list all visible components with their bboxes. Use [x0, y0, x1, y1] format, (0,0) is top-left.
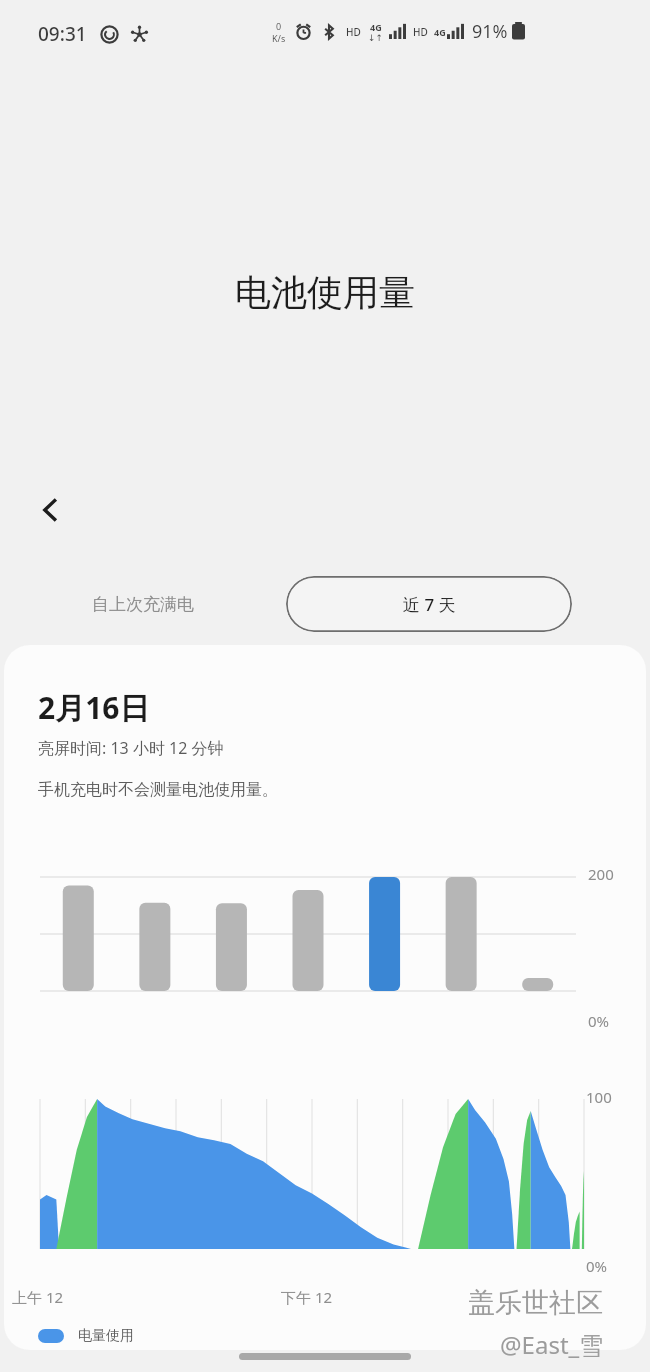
button[interactable]: 近 7 天	[286, 576, 572, 632]
staticText: 100	[586, 1087, 612, 1107]
staticText: HD	[346, 25, 361, 39]
staticText: 下午 12	[281, 1287, 333, 1307]
staticText: 电池使用量	[0, 270, 650, 315]
staticText: 0	[276, 20, 282, 32]
button[interactable]: 自上次充满电	[0, 576, 286, 632]
staticText: 电量使用	[78, 1327, 134, 1345]
staticText: K/s	[272, 32, 286, 44]
staticText: ↓↑	[368, 33, 384, 43]
staticText: 0%	[586, 1256, 608, 1276]
button[interactable]: Back	[22, 482, 78, 538]
staticText: 200	[588, 864, 614, 884]
staticText: 09:31	[38, 21, 87, 47]
staticText: 4G	[434, 26, 446, 38]
staticText: 91%	[472, 19, 508, 44]
staticText: 近 7 天	[403, 593, 456, 616]
staticText: HD	[413, 25, 428, 39]
staticText: 自上次充满电	[92, 594, 194, 615]
staticText: 盖乐世社区	[468, 1286, 603, 1320]
staticText: 亮屏时间: 13 小时 12 分钟	[38, 737, 224, 759]
staticText: @East_雪	[500, 1328, 604, 1361]
staticText: 4G	[370, 21, 382, 33]
button[interactable]: 电量使用	[38, 1327, 134, 1345]
staticText: 上午 12	[12, 1287, 64, 1307]
staticText: 手机充电时不会测量电池使用量。	[38, 780, 278, 800]
staticText: 0%	[588, 1011, 610, 1031]
staticText: 2月16日	[38, 687, 150, 728]
